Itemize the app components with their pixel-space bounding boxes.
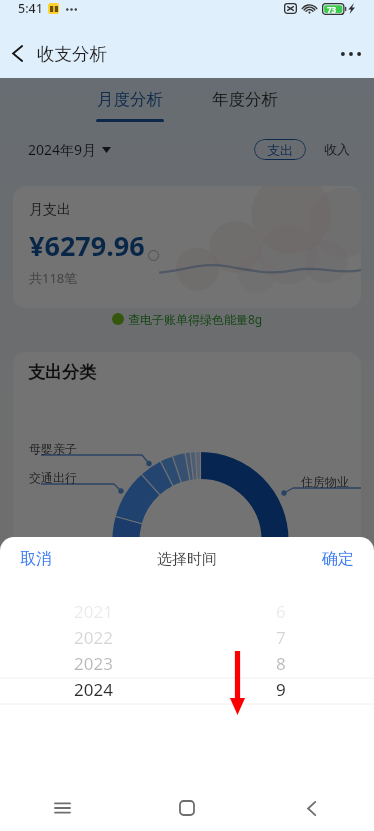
staticText: ¥6279.96: [29, 227, 145, 264]
button[interactable]: Home: [124, 785, 249, 831]
staticText: 月度分析: [97, 89, 163, 110]
button[interactable]: 月度分析: [72, 78, 187, 127]
staticText: 收支分析: [37, 43, 107, 65]
button[interactable]: Back: [0, 29, 35, 78]
staticText: 年度分析: [212, 89, 278, 110]
staticText: 月支出: [29, 201, 71, 219]
button[interactable]: 年度分析: [187, 78, 302, 127]
staticText: 取消: [20, 549, 52, 569]
staticText: 2024年9月: [28, 140, 97, 159]
button[interactable]: 2023: [0, 650, 187, 676]
button[interactable]: 2024: [0, 676, 187, 702]
staticText: 8: [276, 652, 286, 675]
button[interactable]: Back: [249, 785, 374, 831]
staticText: 2024: [74, 678, 113, 701]
staticText: 确定: [322, 549, 354, 569]
button[interactable]: 2022: [0, 624, 187, 650]
staticText: 交通出行: [29, 470, 77, 485]
staticText: 2022: [74, 626, 113, 649]
staticText: 选择时间: [157, 550, 217, 569]
button[interactable]: 8: [187, 650, 374, 676]
staticText: 2021: [74, 600, 113, 623]
button[interactable]: More options: [331, 29, 371, 78]
staticText: 查电子账单得绿色能量8g: [128, 311, 263, 327]
staticText: 6: [276, 600, 286, 623]
button[interactable]: 9: [187, 676, 374, 702]
button[interactable]: 收入: [322, 138, 352, 160]
staticText: 住房物业: [301, 474, 349, 489]
staticText: 支出: [267, 142, 293, 158]
staticText: 共118笔: [29, 269, 78, 287]
staticText: 5:41: [18, 0, 43, 17]
button[interactable]: 取消: [0, 538, 72, 580]
staticText: 9: [276, 678, 286, 701]
button[interactable]: 2024年9月: [28, 140, 111, 159]
staticText: 2023: [74, 652, 113, 675]
staticText: 收入: [324, 141, 350, 157]
staticText: 支出分类: [28, 362, 96, 383]
button[interactable]: Recent apps: [0, 785, 124, 831]
staticText: 7: [276, 626, 286, 649]
button[interactable]: 支出: [254, 139, 306, 160]
staticText: 73: [327, 4, 337, 15]
staticText: 母婴亲子: [29, 441, 77, 456]
button[interactable]: 确定: [302, 538, 374, 580]
